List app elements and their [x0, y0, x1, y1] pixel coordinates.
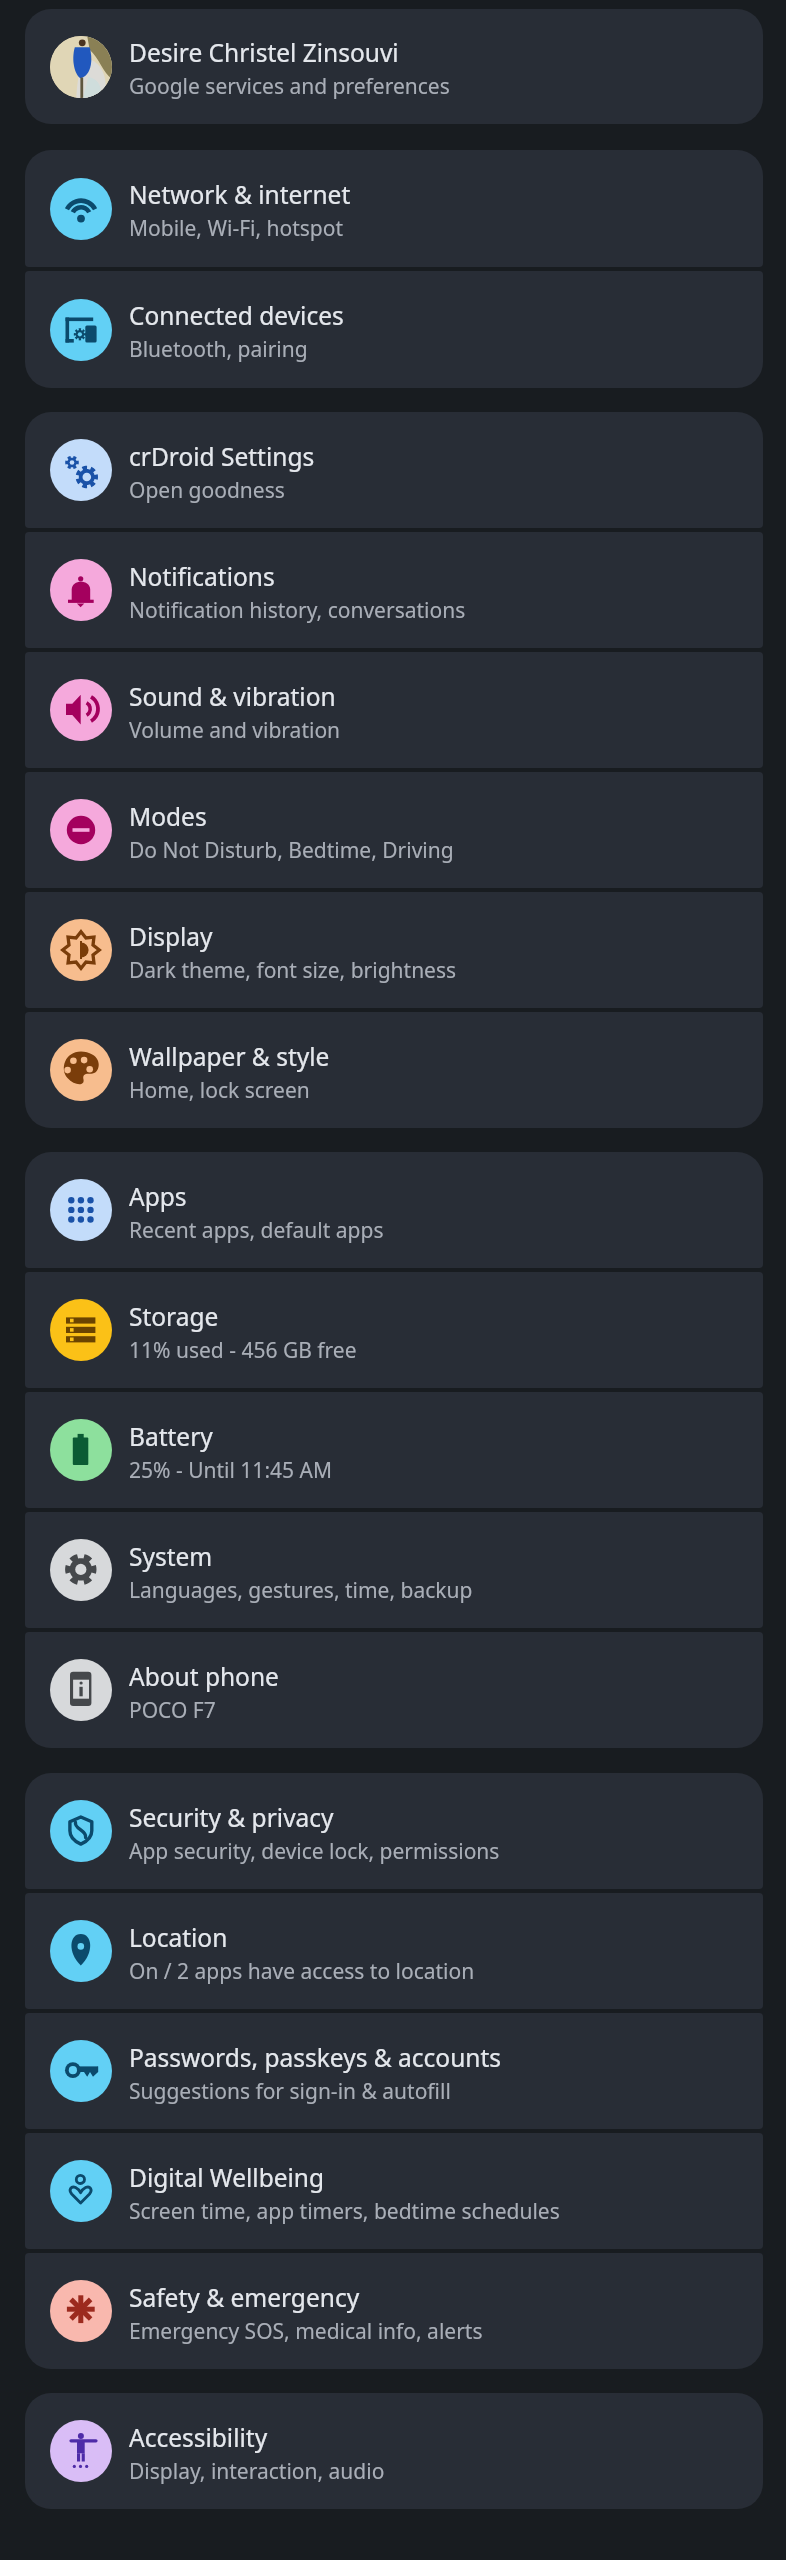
staticText: Connected devices [129, 299, 344, 332]
staticText: Screen time, app timers, bedtime schedul… [129, 2197, 560, 2226]
staticText: Network & internet [129, 178, 351, 211]
staticText: Mobile, Wi-Fi, hotspot [129, 214, 344, 243]
staticText: Security & privacy [129, 1801, 334, 1834]
staticText: On / 2 apps have access to location [129, 1957, 475, 1986]
staticText: POCO F7 [129, 1696, 216, 1725]
staticText: Volume and vibration [129, 716, 341, 745]
staticText: Notifications [129, 560, 275, 593]
staticText: Bluetooth, pairing [129, 335, 308, 364]
button[interactable]: Display [25, 892, 763, 1008]
button[interactable]: Accessibility [25, 2393, 763, 2509]
staticText: Digital Wellbeing [129, 2161, 325, 2194]
button[interactable]: About phone [25, 1632, 763, 1748]
staticText: Passwords, passkeys & accounts [129, 2041, 502, 2074]
staticText: 25% - Until 11:45 AM [129, 1456, 332, 1485]
staticText: Suggestions for sign-in & autofill [129, 2077, 451, 2106]
staticText: Open goodness [129, 476, 285, 505]
button[interactable]: Modes [25, 772, 763, 888]
button[interactable]: Digital Wellbeing [25, 2133, 763, 2249]
button[interactable]: Safety & emergency [25, 2253, 763, 2369]
button[interactable]: Connected devices [25, 271, 763, 388]
staticText: Wallpaper & style [129, 1040, 330, 1073]
button[interactable]: System [25, 1512, 763, 1628]
button[interactable]: Wallpaper & style [25, 1012, 763, 1128]
staticText: Desire Christel Zinsouvi [129, 36, 399, 69]
staticText: Dark theme, font size, brightness [129, 956, 457, 985]
staticText: Languages, gestures, time, backup [129, 1576, 473, 1605]
staticText: Display [129, 920, 213, 953]
button[interactable]: Network & internet [25, 150, 763, 267]
staticText: Accessibility [129, 2421, 268, 2454]
staticText: Modes [129, 800, 207, 833]
staticText: Location [129, 1921, 228, 1954]
staticText: Recent apps, default apps [129, 1216, 384, 1245]
staticText: About phone [129, 1660, 279, 1693]
staticText: Apps [129, 1180, 187, 1213]
staticText: Storage [129, 1300, 219, 1333]
staticText: Safety & emergency [129, 2281, 360, 2314]
staticText: Do Not Disturb, Bedtime, Driving [129, 836, 454, 865]
button[interactable]: Desire Christel Zinsouvi [25, 9, 763, 124]
button[interactable]: Location [25, 1893, 763, 2009]
button[interactable]: Sound & vibration [25, 652, 763, 768]
button[interactable]: Storage [25, 1272, 763, 1388]
staticText: App security, device lock, permissions [129, 1837, 500, 1866]
staticText: Display, interaction, audio [129, 2457, 385, 2486]
button[interactable]: Security & privacy [25, 1773, 763, 1889]
button[interactable]: Passwords, passkeys & accounts [25, 2013, 763, 2129]
button[interactable]: Notifications [25, 532, 763, 648]
staticText: 11% used - 456 GB free [129, 1336, 357, 1365]
staticText: crDroid Settings [129, 440, 315, 473]
staticText: Google services and preferences [129, 72, 450, 101]
staticText: Notification history, conversations [129, 596, 466, 625]
button[interactable]: Battery [25, 1392, 763, 1508]
button[interactable]: Apps [25, 1152, 763, 1268]
staticText: Battery [129, 1420, 213, 1453]
button[interactable]: crDroid Settings [25, 412, 763, 528]
staticText: Emergency SOS, medical info, alerts [129, 2317, 483, 2346]
staticText: Home, lock screen [129, 1076, 310, 1105]
staticText: Sound & vibration [129, 680, 336, 713]
staticText: System [129, 1540, 213, 1573]
